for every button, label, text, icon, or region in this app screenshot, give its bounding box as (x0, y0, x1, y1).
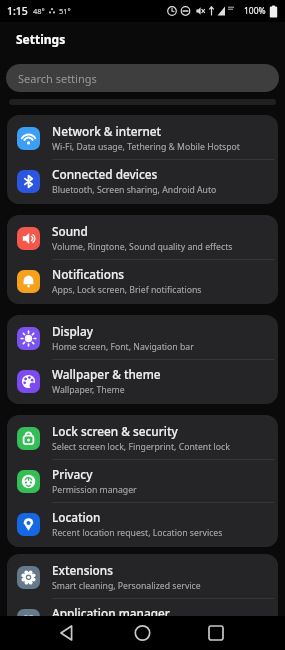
staticText: Connected devices (52, 166, 158, 182)
staticText: Sound (52, 223, 88, 239)
staticText: Bluetooth, Screen sharing, Android Auto (52, 184, 217, 196)
button[interactable] (0, 616, 285, 650)
button[interactable]: Display (7, 317, 278, 359)
staticText: Network & internet (52, 123, 162, 139)
staticText: 100% (244, 5, 266, 17)
staticText: Settings (16, 31, 66, 47)
button[interactable]: Connected devices (7, 160, 278, 202)
staticText: Wallpaper & theme (52, 366, 161, 382)
staticText: Display (52, 323, 94, 339)
staticText: Select screen lock, Fingerprint, Content… (52, 441, 230, 453)
staticText: Search settings (18, 71, 97, 86)
staticText: Smart cleaning, Personalized service (52, 580, 201, 592)
staticText: Permission manager (52, 484, 137, 496)
button[interactable]: Search settings (6, 64, 279, 92)
staticText: Notifications (52, 266, 125, 282)
button[interactable]: Extensions (7, 556, 278, 598)
button[interactable]: Notifications (7, 260, 278, 302)
staticText: Home screen, Font, Navigation bar (52, 341, 194, 353)
staticText: Application manager (52, 605, 170, 621)
staticText: Wi-Fi, Data usage, Tethering & Mobile Ho… (52, 141, 240, 153)
button[interactable]: Application manager (7, 599, 278, 641)
button[interactable]: Privacy (7, 460, 278, 502)
staticText: Extensions (52, 562, 113, 578)
button[interactable]: Location (7, 503, 278, 545)
staticText: 51° (59, 6, 71, 16)
button[interactable]: Sound (7, 217, 278, 259)
staticText: Location (52, 509, 101, 525)
staticText: Recent location request, Location servic… (52, 527, 223, 539)
staticText: Apps, Lock screen, Brief notifications (52, 284, 202, 296)
staticText: 1:15 (7, 4, 28, 18)
button[interactable]: Lock screen & security (7, 417, 278, 459)
staticText: Lock screen & security (52, 423, 178, 439)
staticText: Volume, Ringtone, Sound quality and effe… (52, 241, 233, 253)
staticText: 48° (33, 6, 45, 16)
staticText: Privacy (52, 466, 93, 482)
staticText: Wallpaper, Theme (52, 384, 125, 396)
button[interactable]: Wallpaper & theme (7, 360, 278, 402)
button[interactable] (123, 616, 163, 650)
button[interactable]: Network & internet (7, 117, 278, 159)
staticText: App info, Default apps (52, 623, 143, 635)
